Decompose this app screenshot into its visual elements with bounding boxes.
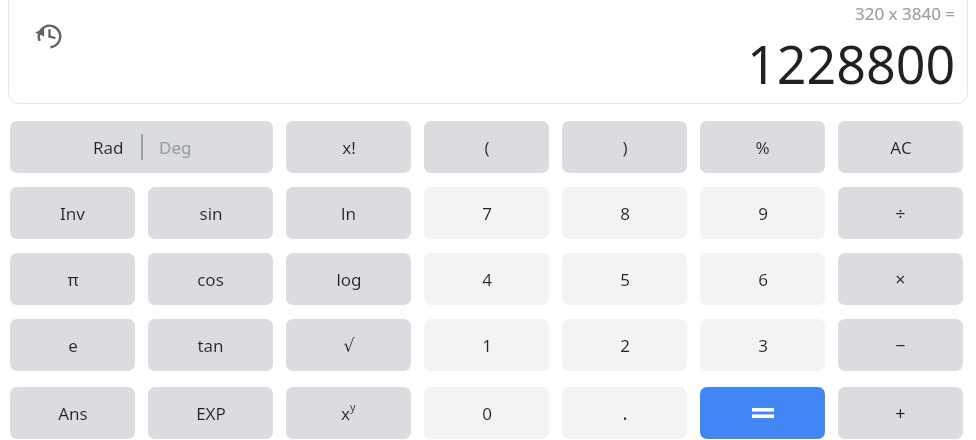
staticText: 5 — [620, 268, 630, 291]
button[interactable]: √ — [286, 319, 411, 371]
staticText: . — [622, 400, 628, 426]
button[interactable]: ÷ — [838, 187, 963, 239]
staticText: 320 x 3840 = — [855, 2, 956, 25]
button[interactable]: 8 — [562, 187, 687, 239]
button[interactable]: π — [10, 253, 135, 305]
staticText: 7 — [482, 202, 492, 225]
button[interactable]: tan — [148, 319, 273, 371]
staticText: π — [67, 268, 79, 291]
staticText: 1 — [482, 334, 492, 357]
staticText: 8 — [620, 202, 630, 225]
button[interactable]: e — [10, 319, 135, 371]
button[interactable]: x! — [286, 121, 411, 173]
staticText: √ — [343, 335, 355, 356]
button[interactable]: log — [286, 253, 411, 305]
button[interactable]: ) — [562, 121, 687, 173]
button[interactable]: 5 — [562, 253, 687, 305]
staticText: x — [341, 402, 350, 425]
staticText: AC — [890, 136, 912, 159]
staticText: Ans — [58, 402, 88, 425]
button[interactable]: 4 — [424, 253, 549, 305]
staticText: % — [755, 136, 770, 159]
staticText: 1228800 — [747, 28, 956, 99]
staticText: Inv — [60, 202, 85, 225]
button[interactable]: − — [838, 319, 963, 371]
staticText: 9 — [758, 202, 768, 225]
staticText: 4 — [482, 268, 492, 291]
button[interactable]: History — [28, 15, 70, 57]
staticText: ) — [622, 136, 628, 159]
staticText: + — [895, 401, 906, 426]
button[interactable]: Equals — [700, 387, 825, 439]
button[interactable]: ln — [286, 187, 411, 239]
button[interactable]: 0 — [424, 387, 549, 439]
button[interactable]: AC — [838, 121, 963, 173]
button[interactable]: . — [562, 387, 687, 439]
button[interactable]: + — [838, 387, 963, 439]
staticText: 2 — [620, 334, 630, 357]
staticText: ÷ — [895, 201, 906, 226]
staticText: ln — [341, 202, 356, 225]
staticText: Rad — [93, 136, 124, 159]
button[interactable]: 3 — [700, 319, 825, 371]
button[interactable]: Rad — [10, 121, 273, 173]
staticText: tan — [197, 334, 224, 357]
button[interactable]: Ans — [10, 387, 135, 439]
staticText: × — [895, 267, 906, 292]
staticText: cos — [197, 268, 224, 291]
button[interactable]: Inv — [10, 187, 135, 239]
button[interactable]: 1 — [424, 319, 549, 371]
button[interactable]: 7 — [424, 187, 549, 239]
button[interactable]: x — [286, 387, 411, 439]
staticText: − — [895, 333, 906, 358]
staticText: y — [350, 399, 356, 414]
staticText: e — [68, 334, 78, 357]
staticText: log — [336, 268, 362, 291]
button[interactable]: 2 — [562, 319, 687, 371]
staticText: x! — [342, 136, 356, 159]
staticText: 0 — [482, 402, 492, 425]
button[interactable]: ( — [424, 121, 549, 173]
button[interactable]: sin — [148, 187, 273, 239]
staticText: Deg — [159, 136, 192, 159]
button[interactable]: cos — [148, 253, 273, 305]
staticText: 6 — [758, 268, 768, 291]
button[interactable]: EXP — [148, 387, 273, 439]
button[interactable]: × — [838, 253, 963, 305]
staticText: 3 — [758, 334, 768, 357]
staticText: ( — [484, 136, 490, 159]
button[interactable]: 6 — [700, 253, 825, 305]
button[interactable]: % — [700, 121, 825, 173]
staticText: EXP — [196, 402, 226, 425]
staticText: sin — [199, 202, 223, 225]
button[interactable]: 9 — [700, 187, 825, 239]
